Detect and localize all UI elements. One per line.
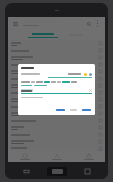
- button[interactable]: [21, 89, 92, 92]
- button[interactable]: [8, 131, 105, 138]
- button[interactable]: [41, 151, 73, 162]
- button[interactable]: More options: [93, 19, 102, 28]
- button[interactable]: [8, 103, 105, 110]
- button[interactable]: [69, 108, 78, 112]
- button[interactable]: [8, 82, 105, 89]
- button[interactable]: [8, 124, 105, 131]
- button[interactable]: [8, 40, 105, 47]
- button[interactable]: [8, 110, 105, 117]
- button[interactable]: Warning: [83, 72, 87, 76]
- button[interactable]: Back: [19, 164, 33, 178]
- button[interactable]: [8, 61, 105, 68]
- button[interactable]: Home: [47, 167, 67, 176]
- button[interactable]: [26, 30, 59, 40]
- button[interactable]: [8, 54, 105, 61]
- button[interactable]: [81, 108, 92, 112]
- button[interactable]: [55, 108, 66, 112]
- button[interactable]: [8, 89, 105, 96]
- button[interactable]: [8, 138, 105, 145]
- button[interactable]: [8, 96, 105, 103]
- button[interactable]: [68, 73, 81, 75]
- button[interactable]: [8, 75, 105, 82]
- button[interactable]: Settings: [88, 72, 92, 76]
- button[interactable]: [21, 73, 42, 75]
- button[interactable]: [8, 145, 105, 151]
- button[interactable]: Menu: [11, 19, 20, 28]
- button[interactable]: [8, 117, 105, 124]
- button[interactable]: Search: [84, 19, 93, 28]
- button[interactable]: [8, 47, 105, 54]
- button[interactable]: [73, 151, 105, 162]
- button[interactable]: Recents: [80, 164, 94, 178]
- button[interactable]: [8, 68, 105, 75]
- button[interactable]: [8, 151, 41, 162]
